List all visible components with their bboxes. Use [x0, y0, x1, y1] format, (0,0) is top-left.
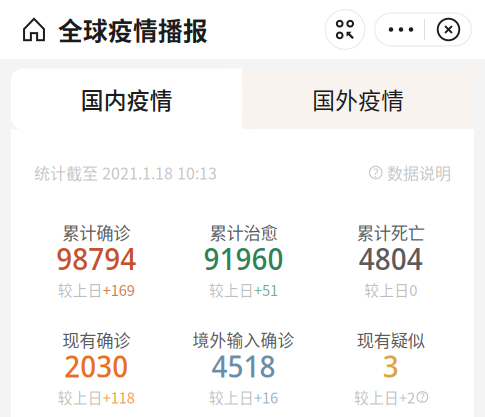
staticText: 较上日 — [364, 279, 409, 300]
staticText: 累计治愈 — [209, 219, 277, 245]
staticText: 统计截至 2021.1.18 10:13 — [34, 161, 217, 184]
staticText: +118 — [103, 386, 135, 408]
staticText: 累计死亡 — [357, 219, 425, 245]
staticText: ? — [420, 390, 424, 404]
button[interactable]: 小程序 — [324, 9, 365, 50]
staticText: 较上日 — [354, 386, 399, 408]
staticText: 较上日 — [209, 386, 254, 408]
staticText: 累计确诊 — [62, 219, 130, 245]
staticText: +169 — [103, 279, 135, 300]
staticText: 4804 — [359, 237, 423, 279]
staticText: 境外输入确诊 — [192, 327, 294, 351]
staticText: 国内疫情 — [81, 83, 173, 115]
staticText: +51 — [254, 279, 278, 300]
button[interactable]: 全球疫情播报 — [0, 0, 218, 59]
staticText: 0 — [409, 279, 417, 300]
staticText: 较上日 — [209, 279, 254, 300]
button[interactable]: 关闭 — [425, 12, 472, 46]
staticText: 全球疫情播报 — [58, 12, 208, 47]
staticText: 国外疫情 — [312, 83, 404, 115]
staticText: 较上日 — [58, 386, 103, 408]
button[interactable]: 累计死亡 — [317, 223, 464, 296]
staticText: 91960 — [203, 237, 283, 279]
button[interactable]: 国外疫情 — [242, 68, 474, 129]
button[interactable]: 现有确诊 — [22, 331, 170, 404]
button[interactable]: 境外输入确诊 — [170, 331, 317, 404]
button[interactable]: 累计治愈 — [170, 223, 317, 296]
button[interactable]: 累计确诊 — [22, 223, 170, 296]
staticText: 4518 — [211, 345, 275, 386]
button[interactable]: 现有疑似 — [317, 331, 464, 404]
staticText: 3 — [383, 345, 399, 386]
staticText: +16 — [254, 386, 278, 408]
staticText: +2 — [399, 386, 415, 408]
button[interactable]: ? — [369, 161, 451, 184]
staticText: ? — [373, 164, 378, 181]
staticText: 2030 — [64, 345, 128, 386]
staticText: 现有疑似 — [357, 327, 425, 352]
button[interactable]: 更多 — [374, 12, 424, 46]
staticText: 数据说明 — [387, 161, 451, 184]
staticText: 较上日 — [58, 279, 103, 300]
staticText: 现有确诊 — [62, 327, 130, 352]
staticText: 98794 — [56, 237, 136, 279]
button[interactable]: 国内疫情 — [11, 68, 242, 129]
